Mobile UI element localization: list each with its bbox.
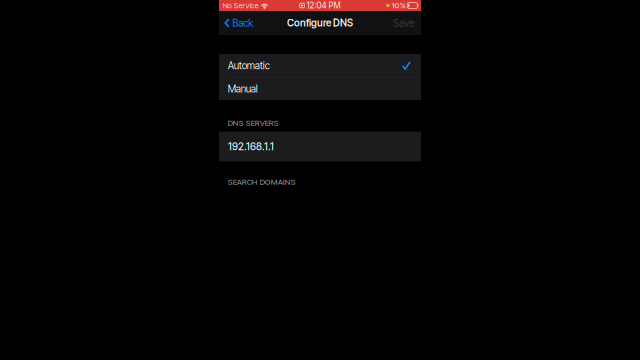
staticText: No Service — [223, 1, 259, 10]
button[interactable]: 192.168.1.1 — [219, 132, 421, 162]
staticText: SEARCH DOMAINS — [228, 177, 296, 187]
button[interactable]: Save — [386, 11, 421, 35]
staticText: 10% — [391, 1, 405, 10]
button[interactable]: Manual — [219, 77, 421, 100]
staticText: 12:04 PM — [306, 0, 340, 10]
staticText: DNS SERVERS — [228, 118, 279, 127]
staticText: Manual — [228, 83, 258, 95]
staticText: Save — [393, 17, 414, 29]
staticText: DNS — [333, 17, 353, 29]
staticText: Back — [232, 17, 253, 29]
button[interactable]: Back — [219, 11, 257, 35]
button[interactable]: Automatic — [219, 54, 421, 77]
staticText: Configure — [287, 17, 331, 29]
staticText: 192.168.1.1 — [228, 140, 274, 153]
staticText: Automatic — [228, 59, 270, 72]
